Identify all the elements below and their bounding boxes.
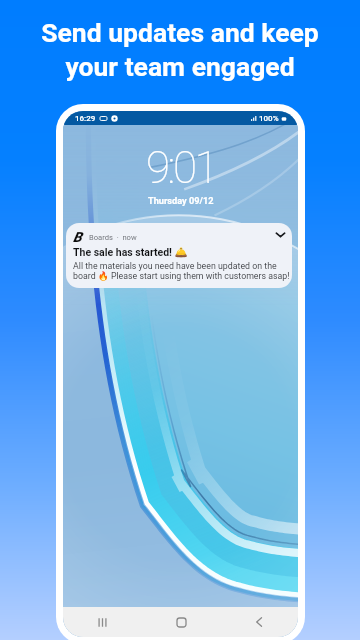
staticText: All the materials you need have been upd… [73,261,291,282]
staticText: 16:29 [75,114,96,123]
staticText: B [73,229,82,245]
button[interactable]: Home [142,607,220,637]
staticText: 9:01 [146,142,217,194]
button[interactable]: Expand notification [274,228,287,241]
staticText: Send updates and keep your team engaged [0,17,360,82]
button[interactable]: B [66,223,292,288]
button[interactable]: Back [220,607,298,637]
button[interactable]: Recent apps [63,607,142,637]
staticText: Thursday 09/12 [148,195,214,206]
staticText: The sale has started! 🛎 [73,246,188,258]
staticText: Boards · now [89,233,137,242]
staticText: 100% [259,114,279,123]
